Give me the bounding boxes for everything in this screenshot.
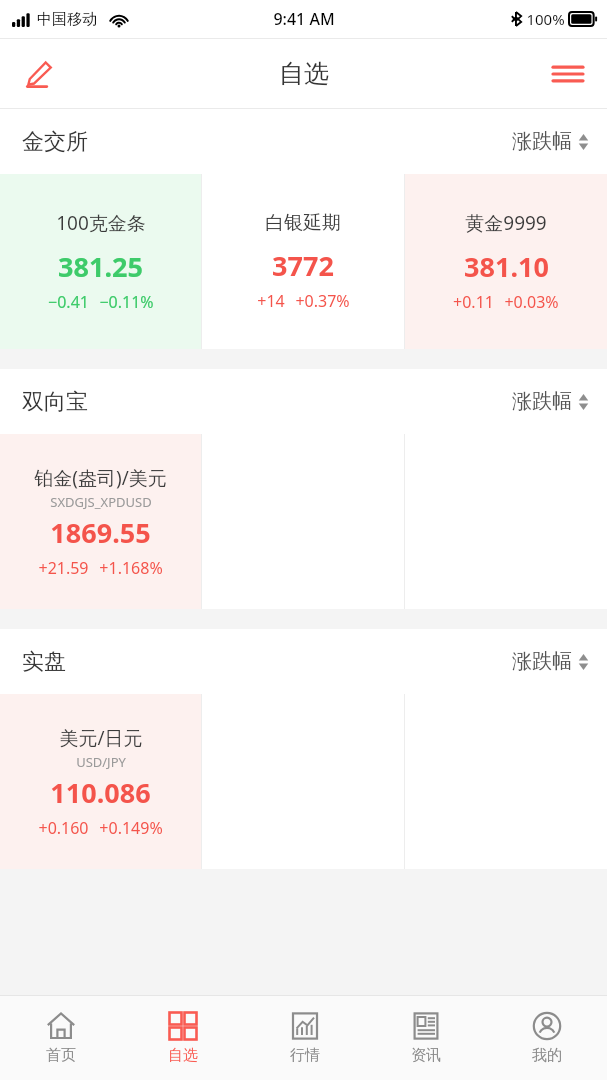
staticText: 我的	[532, 1046, 562, 1065]
staticText: 金交所	[22, 128, 88, 156]
staticText: 100%	[526, 9, 565, 29]
staticText: 100克金条	[56, 210, 146, 236]
staticText: 110.086	[50, 774, 151, 811]
staticText: 涨跌幅	[512, 649, 572, 674]
staticText: 黄金9999	[465, 210, 547, 236]
staticText: 首页	[46, 1046, 76, 1065]
staticText: 白银延期	[265, 211, 341, 235]
button[interactable]: 自选	[122, 1003, 244, 1073]
staticText: 自选	[168, 1046, 198, 1065]
staticText: +0.160	[38, 817, 89, 839]
button[interactable]: 编辑	[16, 51, 62, 97]
staticText: 涨跌幅	[512, 129, 572, 154]
button[interactable]: 涨跌幅	[512, 129, 589, 154]
staticText: −0.41	[48, 291, 89, 313]
staticText: 自选	[279, 58, 329, 89]
staticText: 双向宝	[22, 388, 88, 416]
button[interactable]: 行情	[244, 1003, 365, 1073]
staticText: +0.11	[453, 291, 494, 313]
staticText: 资讯	[411, 1046, 441, 1065]
staticText: 涨跌幅	[512, 389, 572, 414]
button[interactable]: 涨跌幅	[512, 649, 589, 674]
staticText: +0.37%	[295, 290, 350, 312]
button[interactable]: 美元/日元	[0, 694, 201, 869]
staticText: SXDGJS_XPDUSD	[50, 493, 152, 511]
button[interactable]: 铂金(盎司)/美元	[0, 434, 201, 609]
button[interactable]: 涨跌幅	[512, 389, 589, 414]
staticText: +1.168%	[99, 557, 163, 579]
staticText: 实盘	[22, 648, 66, 676]
staticText: USD/JPY	[76, 753, 126, 771]
staticText: +0.03%	[504, 291, 559, 313]
button[interactable]: 资讯	[365, 1003, 486, 1073]
staticText: +21.59	[38, 557, 89, 579]
button[interactable]: 首页	[0, 1003, 122, 1073]
staticText: 铂金(盎司)/美元	[34, 465, 167, 491]
button[interactable]: 白银延期	[202, 174, 404, 349]
staticText: 美元/日元	[59, 725, 143, 751]
button[interactable]: 100克金条	[0, 174, 201, 349]
staticText: −0.11%	[99, 291, 154, 313]
staticText: 381.10	[464, 248, 549, 285]
staticText: 1869.55	[50, 514, 151, 551]
button[interactable]: 黄金9999	[405, 174, 607, 349]
staticText: 中国移动	[37, 10, 97, 29]
staticText: 9:41 AM	[273, 8, 335, 30]
staticText: +14	[257, 290, 285, 312]
staticText: 381.25	[58, 248, 143, 285]
button[interactable]: 菜单	[545, 51, 591, 97]
staticText: 行情	[290, 1046, 320, 1065]
button[interactable]: 我的	[486, 1003, 607, 1073]
staticText: +0.149%	[99, 817, 163, 839]
staticText: 3772	[272, 247, 334, 284]
